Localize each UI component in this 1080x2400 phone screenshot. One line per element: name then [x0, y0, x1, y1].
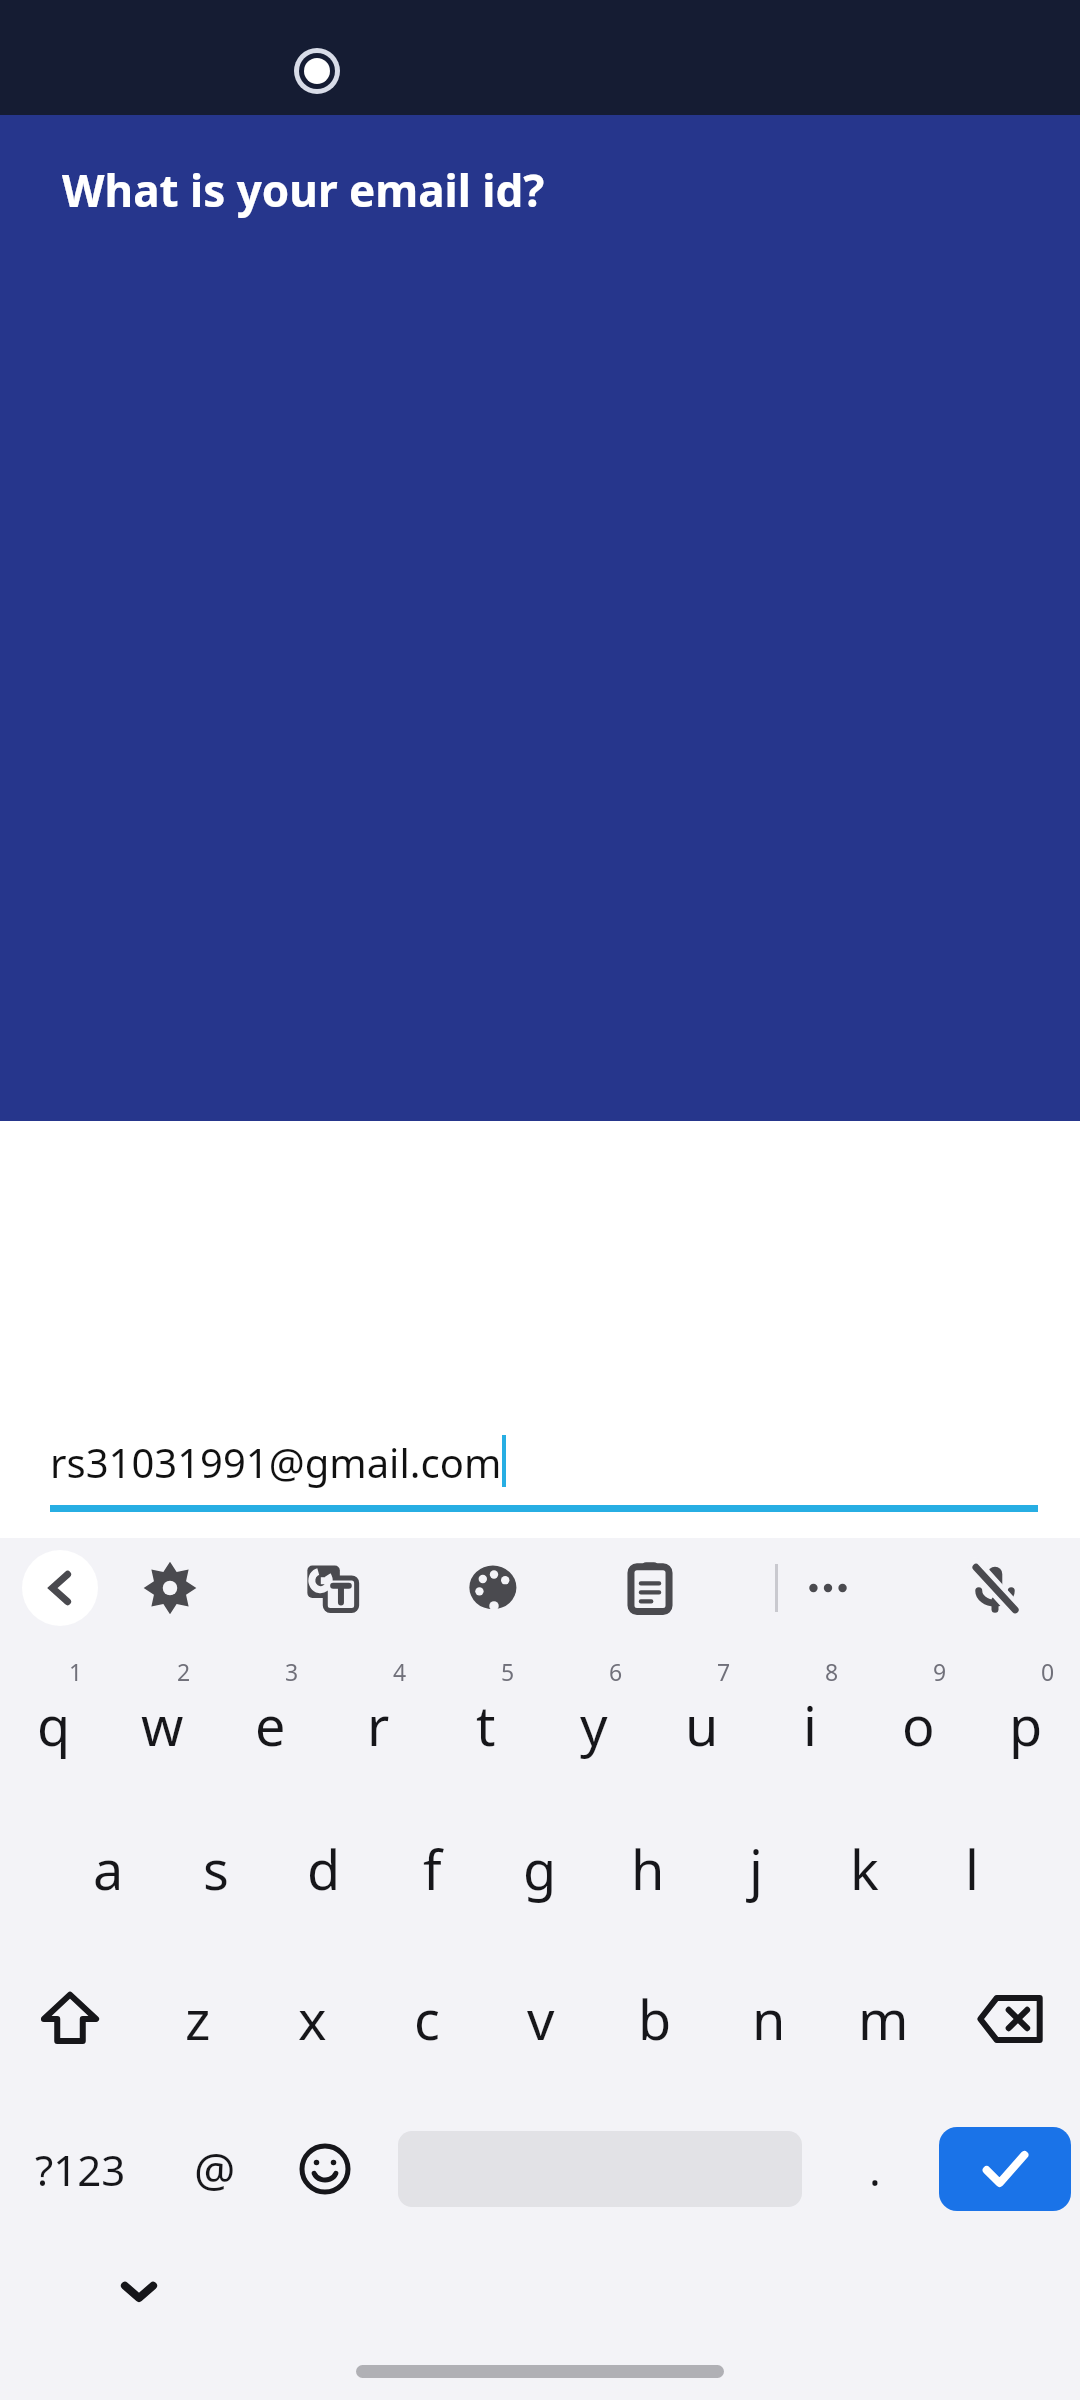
staticText: k	[850, 1832, 879, 1906]
button[interactable]: j	[702, 1794, 810, 1944]
button[interactable]: 9	[864, 1644, 972, 1794]
staticText: 1	[69, 1656, 83, 1687]
staticText: .	[869, 2139, 881, 2199]
staticText: e	[255, 1688, 286, 1762]
staticText: 2	[177, 1656, 191, 1687]
button[interactable]: c	[370, 1944, 484, 2094]
staticText: u	[685, 1688, 719, 1762]
staticText: w	[141, 1688, 184, 1762]
button[interactable]: 1	[0, 1644, 108, 1794]
button[interactable]: More options	[800, 1560, 856, 1616]
staticText: p	[1009, 1688, 1043, 1762]
button[interactable]: Themes	[466, 1560, 522, 1616]
button[interactable]: 3	[216, 1644, 324, 1794]
button[interactable]: v	[484, 1944, 598, 2094]
button[interactable]: d	[270, 1794, 378, 1944]
staticText: ?123	[35, 2141, 126, 2198]
button[interactable]: b	[598, 1944, 712, 2094]
button[interactable]: 4	[324, 1644, 432, 1794]
button[interactable]: h	[594, 1794, 702, 1944]
button[interactable]: Enter	[939, 2127, 1071, 2211]
button[interactable]: 2	[108, 1644, 216, 1794]
staticText: g	[523, 1832, 557, 1906]
button[interactable]: Hide keyboard	[110, 2262, 168, 2320]
staticText: q	[37, 1688, 71, 1762]
button[interactable]: 7	[648, 1644, 756, 1794]
button[interactable]: z	[140, 1944, 255, 2094]
button[interactable]: k	[810, 1794, 918, 1944]
staticText: t	[476, 1688, 496, 1762]
staticText: 8	[825, 1656, 839, 1687]
staticText: What is your email id?	[62, 160, 545, 220]
button[interactable]: g	[486, 1794, 594, 1944]
button[interactable]: Emoji	[270, 2094, 380, 2244]
staticText: 5	[501, 1656, 515, 1687]
button[interactable]: x	[255, 1944, 370, 2094]
button[interactable]: f	[378, 1794, 486, 1944]
staticText: f	[423, 1832, 442, 1906]
button[interactable]: Translate	[304, 1560, 360, 1616]
staticText: 9	[933, 1656, 947, 1687]
staticText: h	[631, 1832, 665, 1906]
button[interactable]: 5	[432, 1644, 540, 1794]
button[interactable]: Backspace	[940, 1944, 1080, 2094]
button[interactable]: a	[54, 1794, 162, 1944]
button[interactable]: l	[918, 1794, 1026, 1944]
staticText: c	[414, 1982, 440, 2056]
button[interactable]: m	[826, 1944, 940, 2094]
staticText: o	[902, 1688, 935, 1762]
staticText: 6	[609, 1656, 623, 1687]
button[interactable]: Settings	[142, 1560, 198, 1616]
button[interactable]: ?123	[0, 2094, 160, 2244]
staticText: i	[803, 1688, 817, 1762]
button[interactable]: rs31031991@gmail.com	[0, 1435, 1080, 1538]
staticText: 0	[1041, 1656, 1055, 1687]
button[interactable]: @	[160, 2094, 270, 2244]
staticText: y	[580, 1688, 608, 1762]
button[interactable]: n	[712, 1944, 826, 2094]
staticText: d	[307, 1832, 341, 1906]
button[interactable]: .	[820, 2094, 930, 2244]
staticText: r	[367, 1688, 390, 1762]
staticText: m	[858, 1982, 909, 2056]
button[interactable]: s	[162, 1794, 270, 1944]
staticText: b	[638, 1982, 672, 2056]
staticText: v	[527, 1982, 555, 2056]
button[interactable]: Shift	[0, 1944, 140, 2094]
button[interactable]: Back	[22, 1550, 98, 1626]
staticText: s	[203, 1832, 229, 1906]
staticText: x	[298, 1982, 327, 2056]
staticText: rs31031991@gmail.com	[50, 1435, 502, 1489]
staticText: a	[93, 1832, 124, 1906]
staticText: 3	[285, 1656, 299, 1687]
button[interactable]: 0	[972, 1644, 1080, 1794]
button[interactable]: Voice input off	[967, 1560, 1023, 1616]
staticText: l	[965, 1832, 979, 1906]
staticText: 7	[717, 1656, 731, 1687]
staticText: z	[185, 1982, 211, 2056]
staticText: j	[749, 1832, 763, 1906]
staticText: 4	[393, 1656, 407, 1687]
staticText: n	[752, 1982, 786, 2056]
staticText: @	[194, 2138, 236, 2201]
button[interactable]: 6	[540, 1644, 648, 1794]
button[interactable]: 8	[756, 1644, 864, 1794]
button[interactable]: Clipboard	[622, 1560, 678, 1616]
